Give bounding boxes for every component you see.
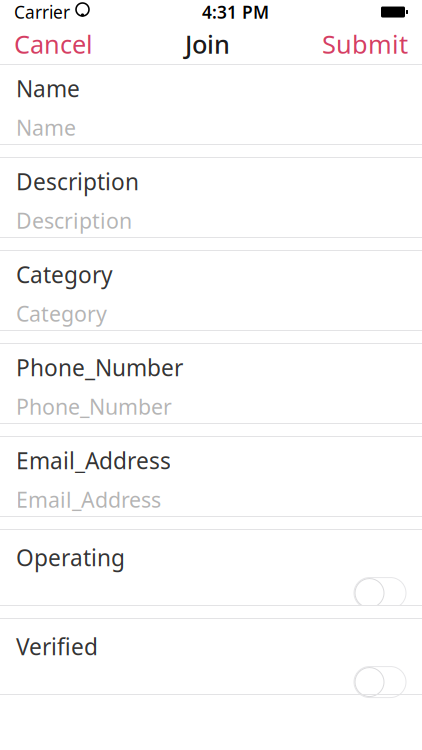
staticText: Email_Address <box>16 445 171 475</box>
button[interactable]: Cancel <box>0 24 107 64</box>
staticText: Operating <box>16 542 125 572</box>
button[interactable]: Category <box>0 251 422 330</box>
button[interactable]: Operating <box>0 530 422 605</box>
staticText: Carrier <box>14 0 70 23</box>
staticText: Submit <box>322 27 408 61</box>
button[interactable]: Email_Address <box>0 437 422 516</box>
staticText: Phone_Number <box>16 352 183 382</box>
button[interactable]: Name <box>0 65 422 144</box>
staticText: Join <box>185 27 230 61</box>
staticText: Phone_Number <box>16 392 172 421</box>
staticText: Category <box>16 299 107 328</box>
staticText: Description <box>16 166 139 196</box>
staticText: Verified <box>16 631 98 661</box>
staticText: Cancel <box>14 27 93 61</box>
button[interactable]: Description <box>0 158 422 237</box>
staticText: Category <box>16 259 113 289</box>
staticText: Description <box>16 206 132 235</box>
button[interactable]: Submit <box>308 24 422 64</box>
staticText: Name <box>16 73 80 103</box>
staticText: 4:31 PM <box>202 0 269 23</box>
button[interactable]: Phone_Number <box>0 344 422 423</box>
button[interactable]: Verified <box>0 619 422 694</box>
staticText: Email_Address <box>16 485 161 514</box>
staticText: Name <box>16 113 76 142</box>
